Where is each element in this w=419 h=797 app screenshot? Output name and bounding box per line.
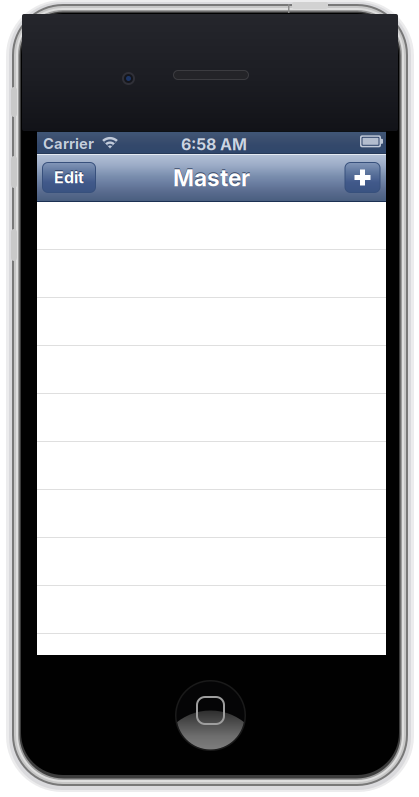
staticText: Carrier [43,135,94,152]
staticText: Master [173,163,250,191]
staticText: Master [173,164,250,192]
staticText: Edit [54,167,84,186]
staticText: 6:58 AM [181,135,247,154]
button[interactable]: Edit [42,162,96,193]
staticText: Edit [54,168,84,187]
button[interactable]: Add [344,162,380,193]
